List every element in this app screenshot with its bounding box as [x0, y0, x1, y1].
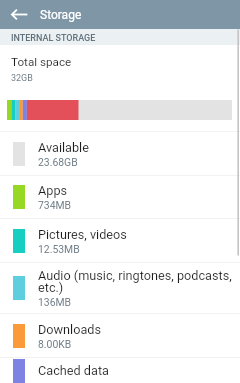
button[interactable]: Available	[0, 132, 240, 175]
staticText: Apps	[38, 183, 68, 198]
staticText: Storage	[40, 8, 82, 22]
staticText: Pictures, videos	[38, 227, 127, 242]
staticText: Total space	[11, 55, 72, 69]
button[interactable]: Pictures, videos	[0, 219, 240, 262]
button[interactable]: Back	[0, 0, 38, 29]
staticText: 8.00KB	[38, 338, 72, 350]
staticText: Cached data	[38, 363, 109, 378]
button[interactable]: Apps	[0, 176, 240, 218]
button[interactable]: Cached data	[0, 358, 240, 383]
staticText: Available	[38, 140, 89, 155]
button[interactable]: Audio (music, ringtones, podcasts, etc.)	[0, 263, 240, 313]
staticText: INTERNAL STORAGE	[11, 33, 96, 44]
staticText: 12.53MB	[38, 243, 80, 255]
staticText: 23.68GB	[38, 156, 78, 168]
staticText: 136MB	[38, 296, 72, 308]
staticText: Audio (music, ringtones, podcasts, etc.)	[38, 268, 232, 295]
staticText: 734MB	[38, 199, 72, 211]
button[interactable]: Downloads	[0, 314, 240, 357]
staticText: 32GB	[11, 73, 33, 84]
staticText: Downloads	[38, 322, 102, 337]
